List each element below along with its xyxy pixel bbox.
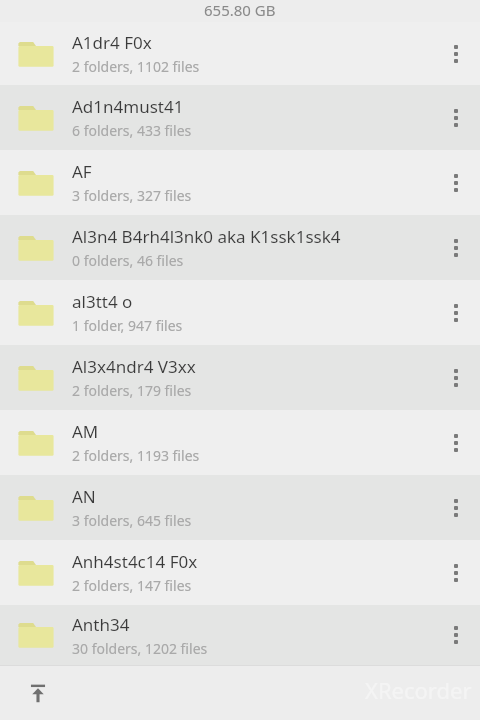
button[interactable]: Move to top: [18, 673, 58, 713]
staticText: al3tt4 o: [72, 290, 133, 313]
staticText: 3 folders, 327 files: [72, 186, 192, 205]
button[interactable]: Anh4st4c14 F0x: [0, 540, 480, 605]
button[interactable]: Anth34: [0, 605, 480, 665]
button[interactable]: Al3n4 B4rh4l3nk0 aka K1ssk1ssk4: [0, 215, 480, 280]
button[interactable]: More options: [432, 150, 480, 215]
staticText: AN: [72, 485, 96, 508]
staticText: Anh4st4c14 F0x: [72, 550, 198, 573]
button[interactable]: More options: [432, 215, 480, 280]
button[interactable]: al3tt4 o: [0, 280, 480, 345]
staticText: 2 folders, 1102 files: [72, 57, 200, 76]
staticText: 2 folders, 1193 files: [72, 446, 200, 465]
button[interactable]: AF: [0, 150, 480, 215]
button[interactable]: More options: [432, 475, 480, 540]
staticText: Al3n4 B4rh4l3nk0 aka K1ssk1ssk4: [72, 225, 341, 248]
staticText: Anth34: [72, 613, 130, 636]
staticText: Ad1n4must41: [72, 95, 184, 118]
button[interactable]: More options: [432, 85, 480, 150]
staticText: 30 folders, 1202 files: [72, 639, 208, 658]
staticText: AM: [72, 420, 99, 443]
button[interactable]: More options: [432, 280, 480, 345]
button[interactable]: More options: [432, 605, 480, 665]
button[interactable]: More options: [432, 540, 480, 605]
staticText: Al3x4ndr4 V3xx: [72, 355, 196, 378]
button[interactable]: A1dr4 F0x: [0, 22, 480, 85]
staticText: 2 folders, 147 files: [72, 576, 192, 595]
staticText: 655.80 GB: [204, 0, 276, 20]
button[interactable]: More options: [432, 22, 480, 85]
staticText: A1dr4 F0x: [72, 31, 152, 54]
button[interactable]: More options: [432, 410, 480, 475]
staticText: 2 folders, 179 files: [72, 381, 192, 400]
button[interactable]: Ad1n4must41: [0, 85, 480, 150]
staticText: 1 folder, 947 files: [72, 316, 183, 335]
staticText: 6 folders, 433 files: [72, 121, 192, 140]
button[interactable]: AN: [0, 475, 480, 540]
staticText: 0 folders, 46 files: [72, 251, 184, 270]
button[interactable]: AM: [0, 410, 480, 475]
staticText: 3 folders, 645 files: [72, 511, 192, 530]
button[interactable]: More options: [432, 345, 480, 410]
staticText: AF: [72, 160, 92, 183]
button[interactable]: Al3x4ndr4 V3xx: [0, 345, 480, 410]
